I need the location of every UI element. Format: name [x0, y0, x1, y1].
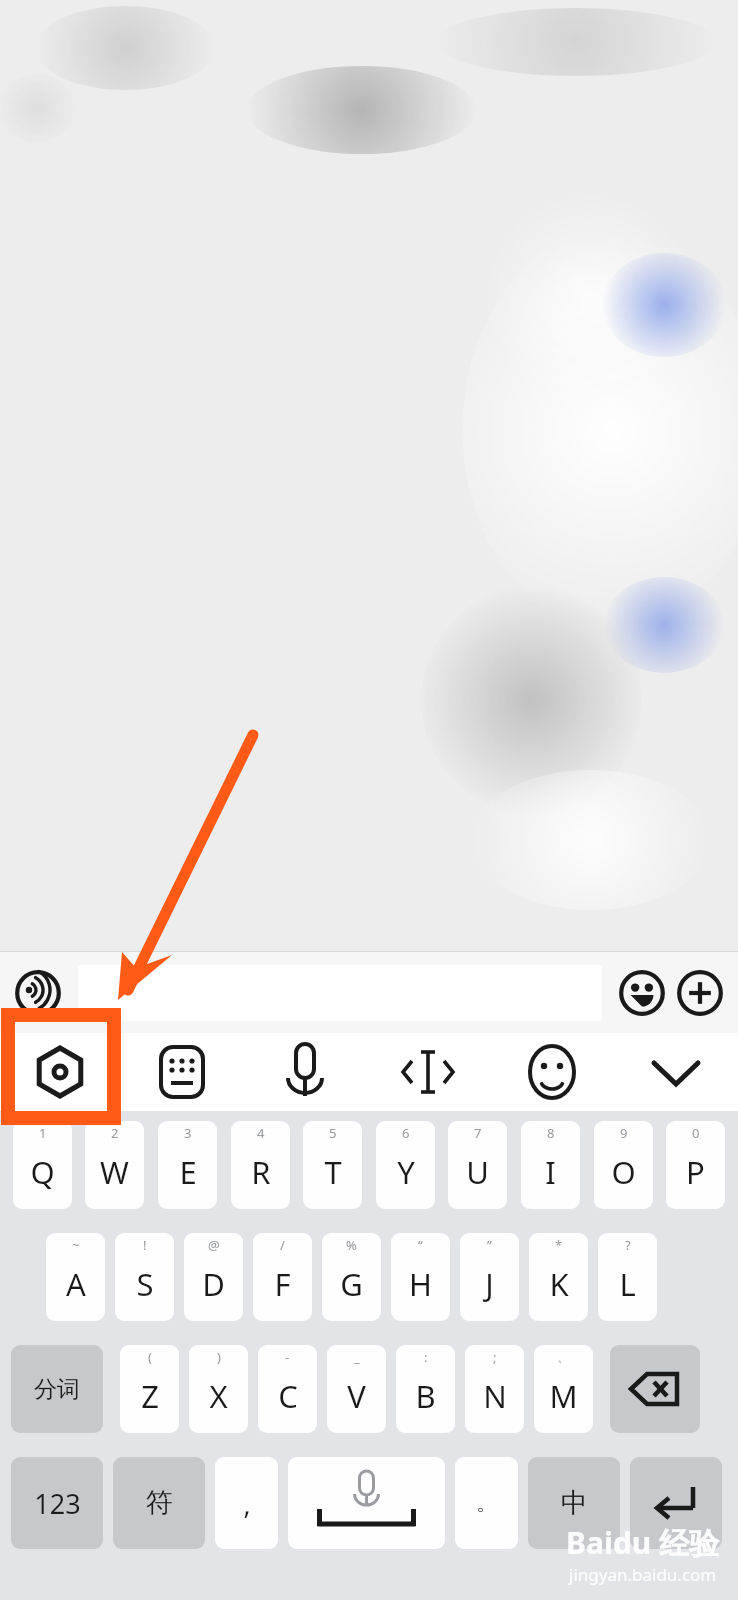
staticText: Baidu 经验	[566, 1522, 720, 1563]
button[interactable]: 8	[521, 1121, 580, 1209]
button[interactable]	[288, 1457, 445, 1549]
staticText: 中	[561, 1486, 588, 1520]
staticText: Y	[397, 1151, 415, 1193]
staticText: 5	[329, 1124, 337, 1142]
staticText: /	[280, 1236, 285, 1254]
staticText: N	[483, 1375, 507, 1417]
staticText: K	[549, 1263, 569, 1305]
button[interactable]: Keyboard layout	[154, 1044, 210, 1100]
staticText: ~	[72, 1236, 80, 1254]
staticText: (	[148, 1348, 152, 1366]
button[interactable]: 、	[534, 1345, 593, 1433]
staticText: 7	[474, 1124, 482, 1142]
staticText: X	[209, 1375, 228, 1417]
staticText: ;	[493, 1348, 497, 1366]
staticText: P	[686, 1151, 705, 1193]
button[interactable]: ?	[598, 1233, 657, 1321]
staticText: R	[251, 1151, 271, 1193]
button[interactable]: 4	[231, 1121, 290, 1209]
button[interactable]: /	[253, 1233, 312, 1321]
staticText: 6	[402, 1124, 410, 1142]
staticText: 8	[547, 1124, 555, 1142]
staticText: Q	[30, 1151, 55, 1193]
button[interactable]: @	[184, 1233, 243, 1321]
staticText: )	[217, 1348, 221, 1366]
staticText: 3	[184, 1124, 192, 1142]
staticText: J	[485, 1263, 494, 1305]
button[interactable]: More options	[674, 967, 726, 1019]
staticText: “	[418, 1236, 423, 1254]
button[interactable]: Emoji	[616, 967, 668, 1019]
button[interactable]: Input settings	[30, 1042, 90, 1102]
staticText: F	[274, 1263, 291, 1305]
button[interactable]: 0	[666, 1121, 725, 1209]
button[interactable]: 7	[448, 1121, 507, 1209]
staticText: 2	[111, 1124, 119, 1142]
staticText: E	[179, 1151, 197, 1193]
staticText: 4	[257, 1124, 265, 1142]
button[interactable]: 5	[303, 1121, 362, 1209]
staticText: 。	[476, 1489, 498, 1517]
staticText: I	[545, 1151, 556, 1193]
button[interactable]: 123	[11, 1457, 103, 1549]
staticText: D	[202, 1263, 225, 1305]
button[interactable]: _	[327, 1345, 386, 1433]
staticText: ,	[243, 1485, 251, 1522]
button[interactable]: Text editing	[400, 1044, 456, 1100]
button[interactable]: 6	[376, 1121, 435, 1209]
button[interactable]: 分词	[11, 1345, 103, 1433]
button[interactable]: 。	[455, 1457, 518, 1549]
staticText: A	[66, 1263, 86, 1305]
staticText: M	[549, 1375, 578, 1417]
button[interactable]: 符	[113, 1457, 205, 1549]
button[interactable]: !	[115, 1233, 174, 1321]
button[interactable]: 1	[13, 1121, 72, 1209]
staticText: jingyan.baidu.com	[569, 1563, 717, 1586]
button[interactable]	[630, 1457, 722, 1549]
staticText: 符	[146, 1486, 173, 1520]
staticText: 分词	[34, 1375, 80, 1404]
button[interactable]: 3	[158, 1121, 217, 1209]
staticText: S	[136, 1263, 154, 1305]
staticText: _	[354, 1348, 360, 1366]
staticText: L	[619, 1263, 636, 1305]
staticText: !	[143, 1236, 147, 1254]
button[interactable]: 9	[594, 1121, 653, 1209]
button[interactable]: %	[322, 1233, 381, 1321]
staticText: 9	[620, 1124, 628, 1142]
button[interactable]: -	[258, 1345, 317, 1433]
staticText: -	[285, 1348, 290, 1366]
button[interactable]: ;	[465, 1345, 524, 1433]
button[interactable]	[610, 1345, 700, 1433]
button[interactable]	[78, 965, 602, 1021]
button[interactable]: ”	[460, 1233, 519, 1321]
staticText: O	[611, 1151, 636, 1193]
staticText: *	[555, 1236, 563, 1254]
button[interactable]: *	[529, 1233, 588, 1321]
staticText: H	[409, 1263, 432, 1305]
button[interactable]: Voice input	[12, 967, 64, 1019]
button[interactable]: )	[189, 1345, 248, 1433]
staticText: 1	[39, 1124, 47, 1142]
button[interactable]: Sticker	[524, 1044, 580, 1100]
button[interactable]: :	[396, 1345, 455, 1433]
button[interactable]: 中	[528, 1457, 620, 1549]
staticText: :	[424, 1348, 428, 1366]
staticText: ”	[487, 1236, 492, 1254]
staticText: C	[278, 1375, 298, 1417]
staticText: T	[324, 1151, 342, 1193]
staticText: W	[100, 1151, 129, 1193]
button[interactable]: (	[120, 1345, 179, 1433]
button[interactable]: ,	[215, 1457, 278, 1549]
staticText: 0	[692, 1124, 700, 1142]
staticText: @	[208, 1236, 220, 1254]
staticText: Z	[141, 1375, 159, 1417]
staticText: U	[466, 1151, 489, 1193]
button[interactable]: Voice	[277, 1044, 333, 1100]
button[interactable]: “	[391, 1233, 450, 1321]
button[interactable]: Hide keyboard	[648, 1044, 704, 1100]
button[interactable]: ~	[46, 1233, 105, 1321]
staticText: B	[415, 1375, 436, 1417]
button[interactable]: 2	[85, 1121, 144, 1209]
staticText: V	[347, 1375, 366, 1417]
